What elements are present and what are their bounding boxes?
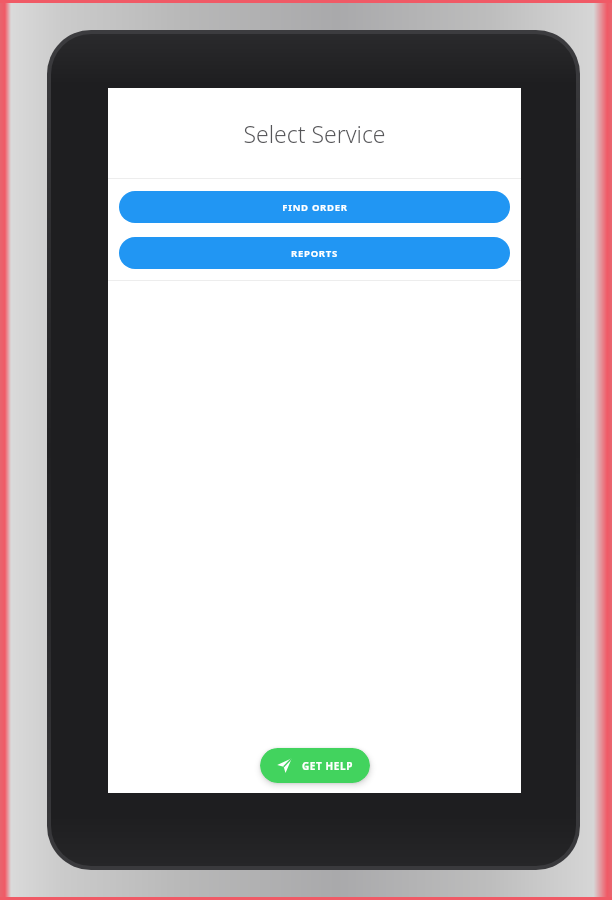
button[interactable]: FIND ORDER (119, 191, 510, 223)
staticText: REPORTS (291, 247, 338, 260)
staticText: Select Service (243, 118, 386, 149)
other: Get help (276, 757, 293, 774)
button[interactable]: Get help (260, 748, 370, 783)
button[interactable]: REPORTS (119, 237, 510, 269)
staticText: GET HELP (302, 759, 354, 773)
staticText: FIND ORDER (282, 201, 348, 214)
